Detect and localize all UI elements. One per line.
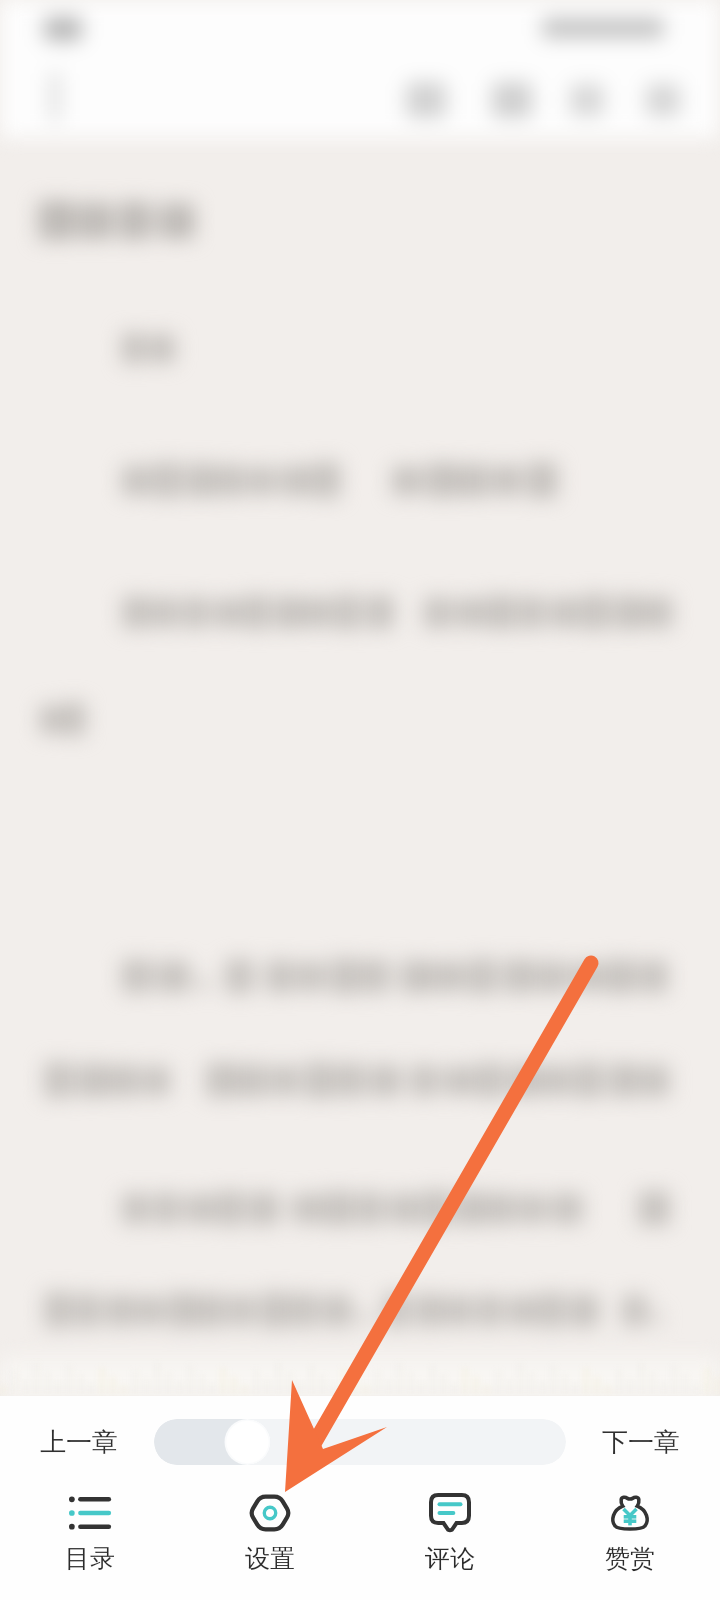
button[interactable]: 评论 (360, 1488, 540, 1600)
staticText: 目录 (65, 1543, 115, 1574)
staticText: 上一章 (40, 1426, 118, 1459)
button[interactable]: 设置 (180, 1488, 360, 1600)
button[interactable]: 目录 (0, 1488, 180, 1600)
button[interactable]: 赞赏 (540, 1488, 720, 1600)
staticText: 评论 (425, 1543, 475, 1574)
button[interactable]: 下一章 (578, 1410, 704, 1475)
staticText: 赞赏 (605, 1543, 655, 1574)
staticText: 下一章 (602, 1426, 680, 1459)
button[interactable]: Chapter progress (154, 1419, 566, 1465)
staticText: 设置 (245, 1543, 295, 1574)
button[interactable]: 上一章 (16, 1410, 142, 1475)
